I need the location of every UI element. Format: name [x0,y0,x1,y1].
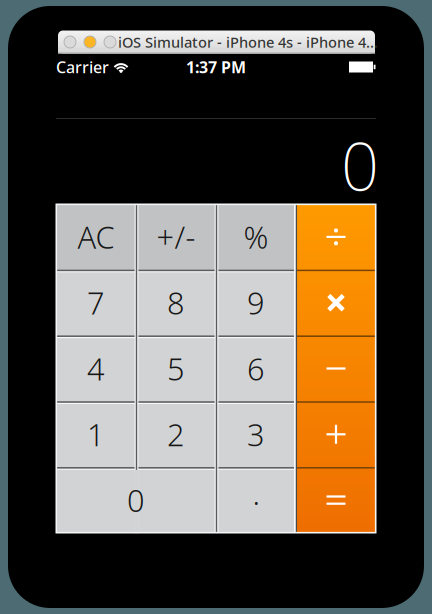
button[interactable]: 8 [136,270,216,336]
button[interactable]: % [216,204,296,270]
button[interactable]: . [216,467,296,533]
button[interactable]: Equals [296,467,376,533]
button[interactable]: Add [296,401,376,467]
staticText: 2 [167,414,185,455]
button[interactable]: 4 [56,336,136,401]
staticText: 8 [167,282,185,323]
button[interactable]: Window control [84,36,96,48]
button[interactable]: 5 [136,336,216,401]
button[interactable]: 0 [56,467,216,533]
staticText: 9 [247,282,265,323]
button[interactable]: 6 [216,336,296,401]
staticText: Carrier [56,56,109,78]
button[interactable]: Divide [296,204,376,270]
staticText: 1 [87,414,105,455]
staticText: 0 [341,121,379,209]
staticText: 5 [167,348,185,389]
button[interactable]: 9 [216,270,296,336]
staticText: 4 [87,348,105,389]
button[interactable]: Multiply [296,270,376,336]
staticText: . [252,473,259,513]
button[interactable]: 7 [56,270,136,336]
staticText: AC [77,216,114,257]
staticText: 6 [247,348,265,389]
button[interactable]: +/- [136,204,216,270]
staticText: iOS Simulator - iPhone 4s - iPhone 4… [118,32,378,52]
staticText: 0 [127,480,145,520]
staticText: 3 [247,414,265,455]
staticText: 7 [87,282,105,323]
button[interactable]: AC [56,204,136,270]
staticText: +/- [156,216,195,257]
button[interactable]: Subtract [296,336,376,401]
staticText: % [243,216,268,257]
button[interactable]: Window control [104,36,116,48]
button[interactable]: Window control [64,36,76,48]
staticText: 1:37 PM [186,56,246,78]
button[interactable]: 1 [56,401,136,467]
button[interactable]: 3 [216,401,296,467]
button[interactable]: 2 [136,401,216,467]
